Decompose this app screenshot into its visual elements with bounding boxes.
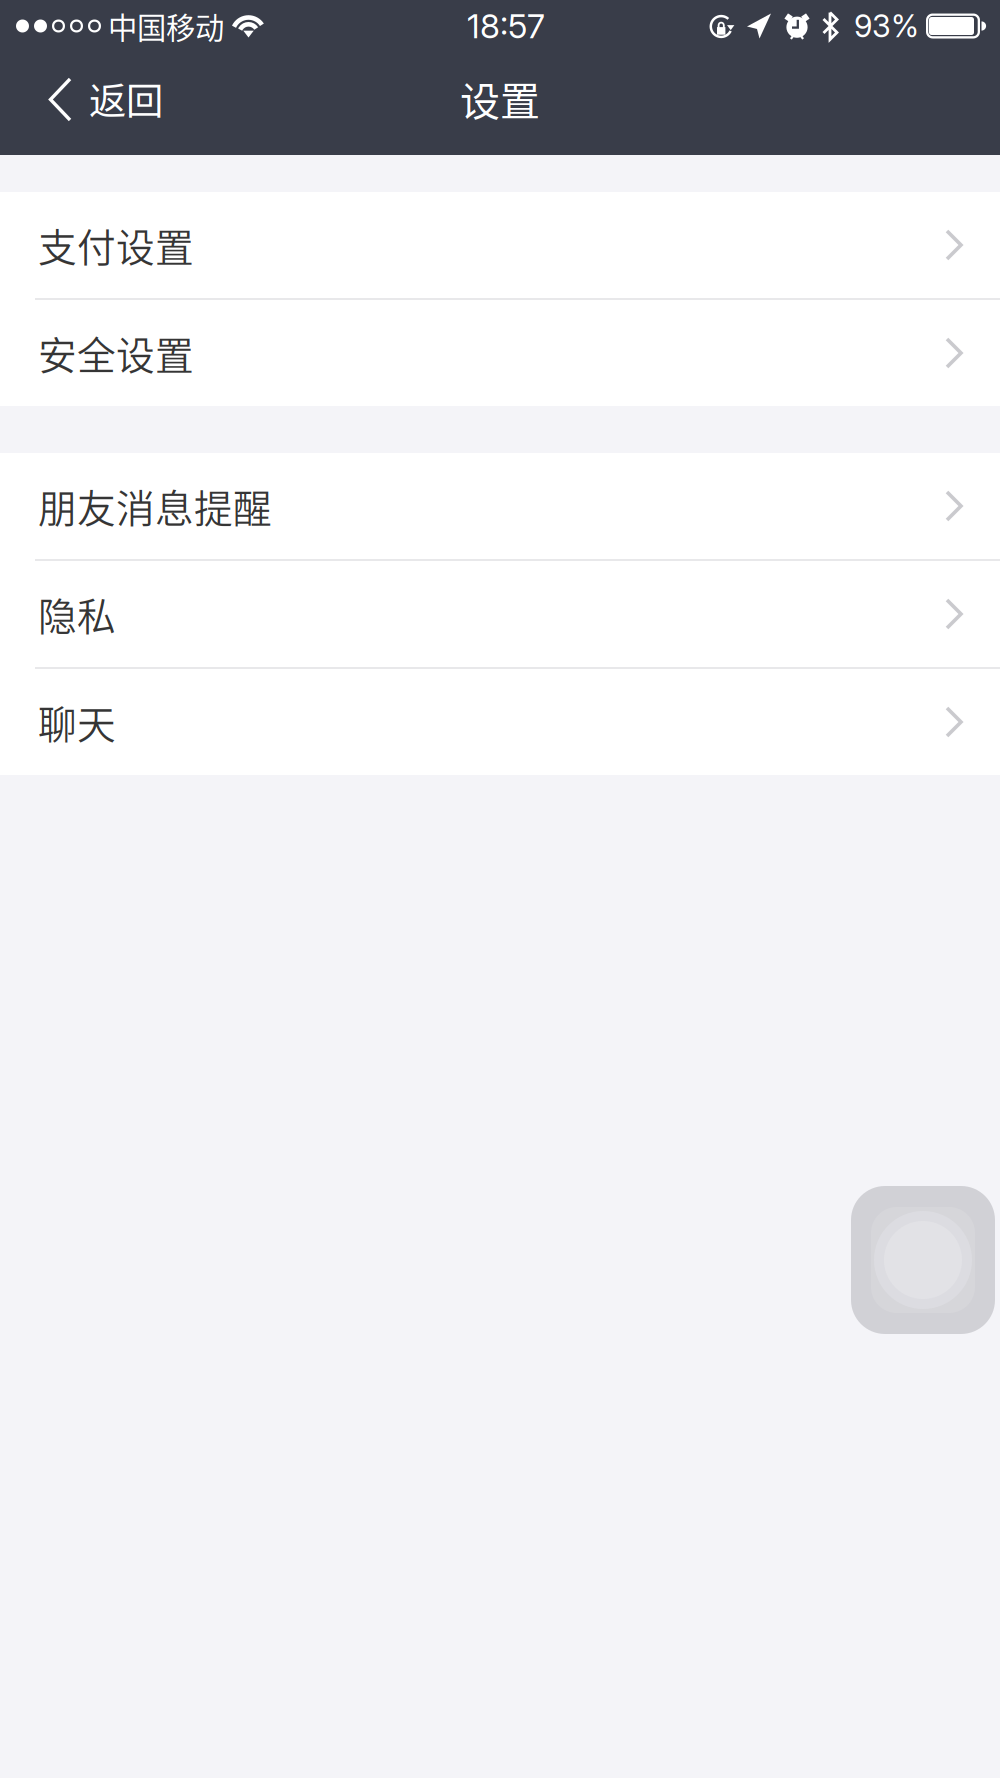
staticText: 中国移动	[108, 5, 224, 47]
button[interactable]: AssistiveTouch	[851, 1186, 995, 1334]
staticText: 93%	[854, 7, 919, 44]
staticText: 返回	[89, 71, 163, 126]
staticText: 朋友消息提醒	[38, 478, 272, 534]
button[interactable]: 支付设置	[0, 192, 1000, 298]
staticText: 隐私	[38, 586, 116, 642]
button[interactable]: 隐私	[0, 561, 1000, 667]
button[interactable]: 朋友消息提醒	[0, 453, 1000, 559]
staticText: 18:57	[467, 6, 545, 46]
staticText: 聊天	[38, 694, 116, 750]
staticText: 支付设置	[38, 217, 194, 273]
button[interactable]: 返回	[0, 53, 189, 154]
staticText: 设置	[460, 69, 540, 127]
staticText: 安全设置	[38, 325, 194, 381]
button[interactable]: 聊天	[0, 669, 1000, 775]
button[interactable]: 安全设置	[0, 300, 1000, 406]
